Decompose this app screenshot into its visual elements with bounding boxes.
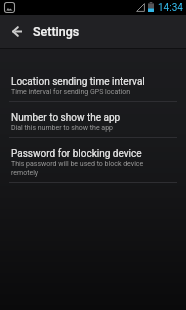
staticText: Settings [33,24,80,39]
button[interactable]: Number to show the app [0,102,186,137]
button[interactable]: Back [0,15,33,48]
staticText: Number to show the app [11,112,121,124]
staticText: Location sending time interval [11,76,145,88]
staticText: Password for blocking device [11,148,142,160]
button[interactable]: Location sending time interval [0,66,186,101]
staticText: Dial this number to show the app [11,124,114,132]
staticText: 14:34 [158,2,183,14]
button[interactable]: Password for blocking device [0,138,186,182]
staticText: This password will be used to block devi… [11,160,172,177]
staticText: Time interval for sending GPS location [11,88,131,96]
